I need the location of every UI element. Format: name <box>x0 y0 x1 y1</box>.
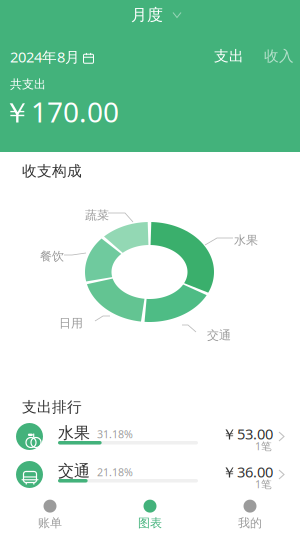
staticText: 收入 <box>264 47 294 65</box>
staticText: 图表 <box>138 516 162 530</box>
staticText: 共支出 <box>10 77 46 92</box>
button[interactable]: 交通 <box>0 458 300 491</box>
staticText: 21.18% <box>97 465 133 479</box>
staticText: ￥36.00 <box>222 462 273 482</box>
button[interactable]: 月度 <box>131 5 181 25</box>
staticText: 31.18% <box>97 427 133 441</box>
staticText: 蔬菜 <box>85 208 109 223</box>
staticText: 1笔 <box>255 477 272 491</box>
staticText: 收支构成 <box>22 162 82 180</box>
button[interactable]: 我的 <box>200 500 300 530</box>
button[interactable]: 2024年8月 <box>10 47 94 66</box>
staticText: 账单 <box>38 516 62 530</box>
button[interactable]: 账单 <box>0 500 100 530</box>
staticText: 日用 <box>59 316 83 331</box>
staticText: 水果 <box>58 423 90 443</box>
staticText: 1笔 <box>255 439 272 453</box>
button[interactable]: 水果 <box>0 420 300 453</box>
staticText: 支出排行 <box>22 398 82 416</box>
staticText: 水果 <box>234 233 258 248</box>
staticText: 交通 <box>58 461 90 481</box>
staticText: ￥170.00 <box>3 93 119 130</box>
staticText: ￥53.00 <box>222 424 273 444</box>
staticText: 餐饮 <box>40 249 64 264</box>
staticText: 我的 <box>238 516 262 530</box>
staticText: 2024年8月 <box>10 47 80 66</box>
button[interactable]: 图表 <box>100 500 200 530</box>
button[interactable]: 收入 <box>264 47 294 65</box>
staticText: 支出 <box>214 47 244 65</box>
button[interactable]: 支出 <box>214 47 244 65</box>
staticText: 月度 <box>131 5 163 25</box>
staticText: 交通 <box>207 328 231 343</box>
